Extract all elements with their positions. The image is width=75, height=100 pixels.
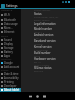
staticText: Display bbox=[4, 42, 13, 46]
button[interactable]: Hardware version bbox=[21, 57, 75, 66]
staticText: ACCOUNTS bbox=[1, 58, 12, 61]
staticText: Data usage bbox=[4, 22, 18, 26]
staticText: Android version bbox=[34, 33, 54, 37]
staticText: Serial: 01234567 bbox=[34, 64, 50, 66]
staticText: JDQ39 bbox=[34, 55, 40, 57]
staticText: 4.2.2 bbox=[34, 37, 39, 39]
button[interactable]: Status bbox=[21, 12, 75, 22]
button[interactable]: Android version bbox=[21, 33, 75, 39]
staticText: Build number bbox=[34, 51, 51, 55]
staticText: Battery, network bbox=[34, 19, 50, 22]
staticText: Google bbox=[4, 61, 13, 65]
button[interactable]: Bluetooth bbox=[0, 17, 21, 22]
staticText: Date & time bbox=[4, 72, 19, 76]
staticText: Hardware version bbox=[34, 57, 56, 61]
button[interactable]: Sound bbox=[0, 38, 21, 42]
button[interactable]: Apps bbox=[0, 54, 21, 58]
staticText: Phone number, signal, etc. bbox=[34, 16, 59, 19]
staticText: Battery bbox=[4, 50, 13, 54]
staticText: Storage bbox=[4, 46, 14, 50]
button[interactable]: Legal information bbox=[21, 22, 75, 27]
button[interactable]: Battery bbox=[0, 50, 21, 54]
button[interactable]: Kernel version bbox=[21, 45, 75, 51]
button[interactable]: Google bbox=[0, 61, 21, 65]
staticText: 3.4.0-gac9222c bbox=[34, 49, 48, 51]
staticText: SYSTEM bbox=[1, 69, 9, 72]
button[interactable]: Ethernet bbox=[0, 30, 21, 34]
staticText: Nexus 7 bbox=[34, 31, 42, 33]
button[interactable]: Baseband version bbox=[21, 39, 75, 45]
staticText: Sound bbox=[4, 38, 12, 42]
staticText: Accessibility bbox=[4, 76, 19, 80]
staticText: SYSTEM UPDATES bbox=[34, 9, 51, 11]
button[interactable]: Wi-Fi bbox=[0, 12, 21, 17]
staticText: Baseband version bbox=[34, 39, 56, 43]
staticText: Add account bbox=[4, 65, 20, 69]
staticText: SELinux status bbox=[34, 66, 52, 70]
button[interactable]: Home bbox=[35, 94, 40, 99]
button[interactable]: Printing bbox=[0, 80, 21, 84]
button[interactable]: Add account bbox=[0, 65, 21, 69]
staticText: Printing bbox=[4, 80, 14, 84]
button[interactable]: Model number bbox=[21, 27, 75, 33]
staticText: Rev 1.0 bbox=[34, 61, 41, 64]
button[interactable]: Storage bbox=[0, 46, 21, 50]
button[interactable]: Date & time bbox=[0, 72, 21, 76]
staticText: Wi-Fi bbox=[4, 13, 10, 17]
button[interactable]: More... bbox=[0, 26, 21, 30]
button[interactable]: Recent apps bbox=[42, 94, 47, 99]
staticText: WIRELESS & NETWORKS bbox=[1, 9, 21, 12]
staticText: Status bbox=[34, 12, 42, 16]
staticText: Developer options bbox=[4, 84, 21, 88]
button[interactable]: SELinux status bbox=[21, 66, 75, 73]
staticText: Kernel version bbox=[34, 45, 52, 49]
button[interactable]: Build number bbox=[21, 51, 75, 57]
button[interactable]: Data usage bbox=[0, 22, 21, 26]
staticText: Settings bbox=[6, 4, 18, 8]
staticText: Ethernet bbox=[4, 30, 15, 34]
staticText: Enforcing bbox=[34, 70, 43, 73]
button[interactable]: Back bbox=[28, 94, 33, 99]
button[interactable]: Developer options bbox=[0, 84, 21, 88]
staticText: Apps bbox=[4, 54, 11, 58]
staticText: Unknown bbox=[34, 43, 43, 45]
staticText: Legal information bbox=[34, 22, 56, 26]
button[interactable]: About tablet bbox=[0, 88, 21, 92]
staticText: DEVICE bbox=[1, 35, 8, 38]
staticText: Bluetooth bbox=[4, 18, 17, 22]
staticText: Model number bbox=[34, 27, 53, 31]
staticText: More... bbox=[4, 26, 13, 30]
button[interactable]: Display bbox=[0, 42, 21, 46]
staticText: About tablet bbox=[4, 88, 20, 92]
button[interactable]: Accessibility bbox=[0, 76, 21, 80]
